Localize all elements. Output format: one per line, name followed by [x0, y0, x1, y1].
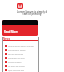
- staticText: Read More: [4, 30, 18, 34]
- button[interactable]: Lorem ipsum dolor sit amet: [0, 44, 64, 48]
- button[interactable]: Dolore magna: [0, 60, 64, 64]
- staticText: Ut enim ad minim: [8, 65, 25, 68]
- staticText: Consectetur adipis: [8, 49, 26, 52]
- button[interactable]: App logo: [17, 3, 23, 9]
- button[interactable]: Ut enim ad minim: [0, 64, 64, 68]
- staticText: Lorem ipsum dolor sit amet: [8, 45, 34, 48]
- staticText: Lorem Ipsum is simply d text of printing: [1, 10, 63, 16]
- button[interactable]: Consectetur adipis: [0, 48, 64, 52]
- staticText: Quis nostrud exe: [8, 69, 24, 72]
- staticText: Dolore magna: [8, 61, 22, 64]
- staticText: Incididunt ut labo: [8, 57, 25, 60]
- button[interactable]: Read More: [2, 20, 38, 36]
- button[interactable]: Quis nostrud exe: [0, 68, 64, 72]
- staticText: News: [3, 37, 11, 41]
- button[interactable]: Sed do eiusmod: [0, 52, 64, 56]
- button[interactable]: Incididunt ut labo: [0, 56, 64, 60]
- staticText: Sed do eiusmod: [8, 53, 24, 56]
